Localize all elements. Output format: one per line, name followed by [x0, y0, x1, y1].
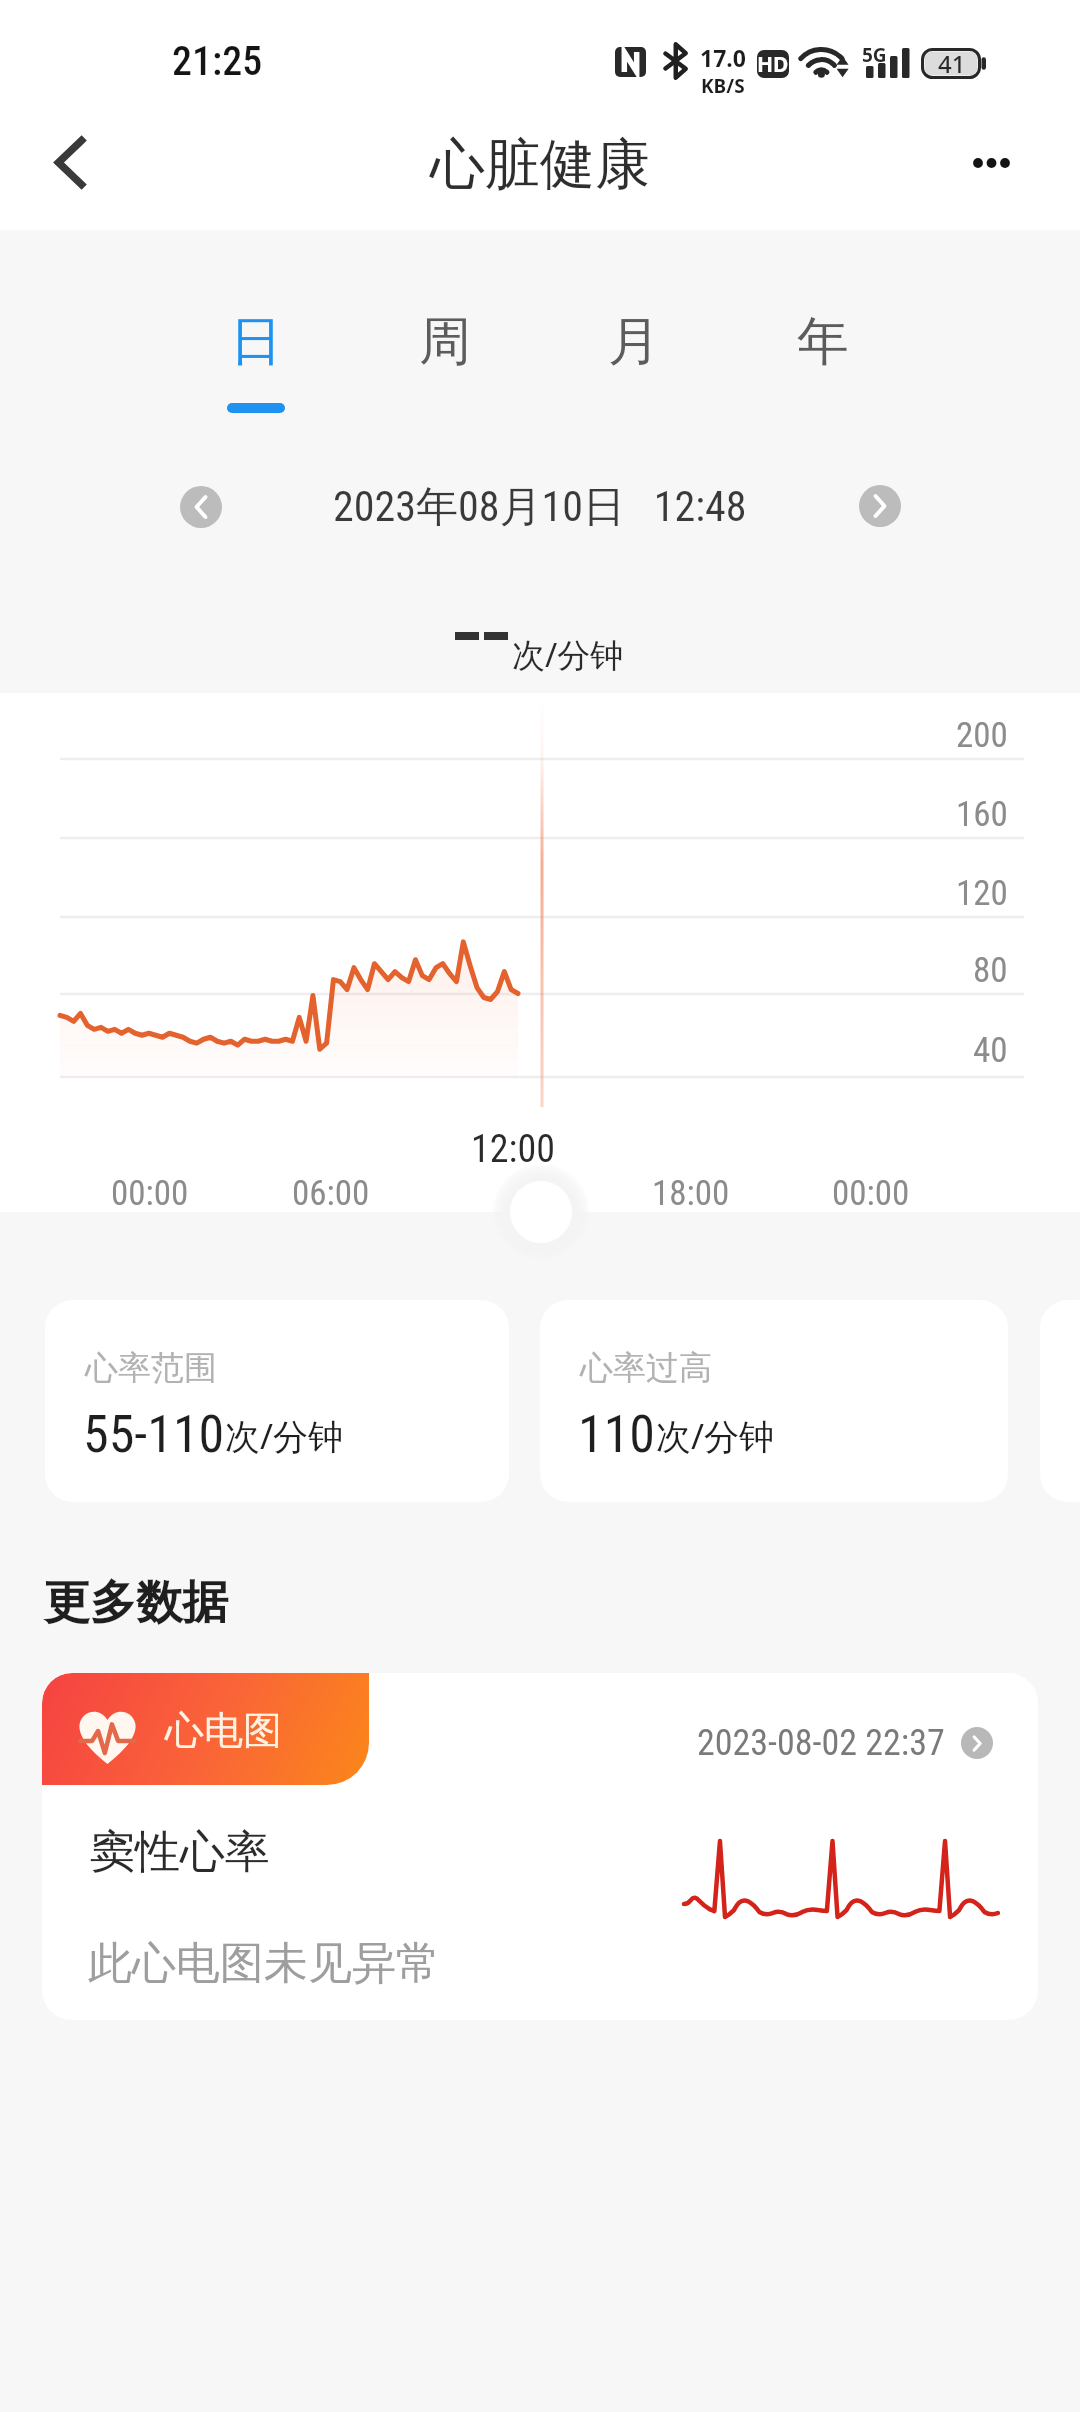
staticText: 06:00: [292, 1173, 370, 1214]
staticText: 110: [578, 1404, 656, 1465]
staticText: 日: [230, 309, 282, 375]
staticText: 窦性心率: [90, 1824, 270, 1881]
button[interactable]: 心率范围: [45, 1300, 509, 1502]
staticText: 心电图: [165, 1706, 282, 1755]
staticText: 心率过高: [580, 1347, 712, 1389]
staticText: 次/分钟: [225, 1412, 344, 1460]
staticText: 41: [938, 47, 966, 80]
button[interactable]: 心电图: [42, 1673, 1038, 2020]
staticText: 月: [608, 309, 660, 375]
staticText: 此心电图未见异常: [88, 1936, 440, 1991]
button[interactable]: 月: [540, 286, 728, 412]
staticText: 00:00: [832, 1173, 910, 1214]
button[interactable]: Back: [0, 0, 140, 230]
staticText: 160: [956, 794, 1008, 835]
staticText: 2023年08月10日 12:48: [333, 481, 747, 534]
staticText: 次/分钟: [656, 1412, 775, 1460]
button[interactable]: 周: [351, 286, 539, 412]
staticText: HD: [757, 50, 789, 78]
staticText: 80: [973, 950, 1008, 991]
button[interactable]: Time scrubber: [490, 1161, 592, 1263]
staticText: 17.0: [700, 42, 746, 73]
staticText: 120: [956, 873, 1008, 914]
button[interactable]: 年: [729, 286, 917, 412]
button[interactable]: Previous day: [180, 486, 222, 528]
staticText: 周: [419, 309, 471, 375]
staticText: 55-110: [83, 1404, 225, 1465]
staticText: 200: [956, 715, 1008, 756]
button[interactable]: 心率过高: [540, 1300, 1008, 1502]
staticText: 心率范围: [85, 1347, 217, 1389]
staticText: 次/分钟: [512, 632, 624, 677]
staticText: 年: [797, 309, 849, 375]
staticText: 12:00: [471, 1127, 555, 1172]
staticText: 21:25: [172, 38, 263, 85]
button[interactable]: More options: [940, 0, 1080, 230]
staticText: 心脏健康: [430, 130, 650, 199]
staticText: 00:00: [111, 1173, 189, 1214]
staticText: 5G: [862, 42, 887, 68]
staticText: 18:00: [652, 1173, 730, 1214]
staticText: 更多数据: [44, 1574, 228, 1632]
staticText: 2023-08-02 22:37: [697, 1722, 945, 1764]
button[interactable]: Next day: [859, 485, 901, 527]
staticText: KB/S: [701, 73, 745, 99]
button[interactable]: 日: [162, 286, 350, 412]
staticText: 40: [973, 1030, 1008, 1071]
